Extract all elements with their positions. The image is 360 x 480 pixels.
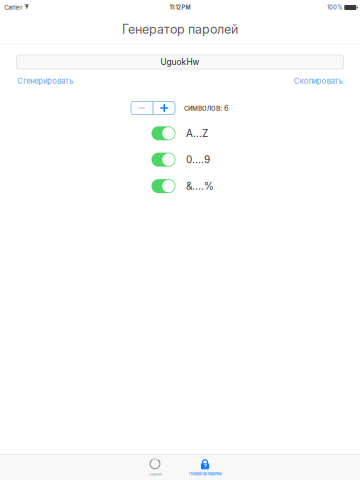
staticText: Carrier (4, 4, 22, 11)
staticText: 11:12 PM (169, 4, 190, 11)
button[interactable]: Пароли (130, 455, 180, 480)
button[interactable]: Decrease length (131, 101, 152, 114)
staticText: Пароли (148, 472, 161, 476)
staticText: Генератор паролей (188, 472, 221, 476)
staticText: &....% (186, 180, 214, 192)
staticText: Сгенерировать (17, 76, 73, 86)
staticText: ? (203, 462, 206, 470)
staticText: Скопировать (294, 76, 343, 86)
staticText: символов: 6 (184, 103, 229, 113)
staticText: A...Z (186, 127, 208, 139)
button[interactable]: &....% (151, 179, 175, 193)
button[interactable]: A...Z (151, 126, 175, 140)
button[interactable]: ? (180, 455, 230, 480)
staticText: 100% (327, 4, 342, 11)
staticText: Генератор паролей (122, 22, 238, 37)
staticText: 0....9 (186, 154, 210, 166)
button[interactable]: 0....9 (151, 153, 175, 167)
button[interactable]: Increase length (153, 101, 175, 114)
button[interactable]: Сгенерировать (17, 75, 73, 86)
staticText: UguokHw (160, 57, 199, 67)
button[interactable]: Скопировать (294, 75, 343, 86)
